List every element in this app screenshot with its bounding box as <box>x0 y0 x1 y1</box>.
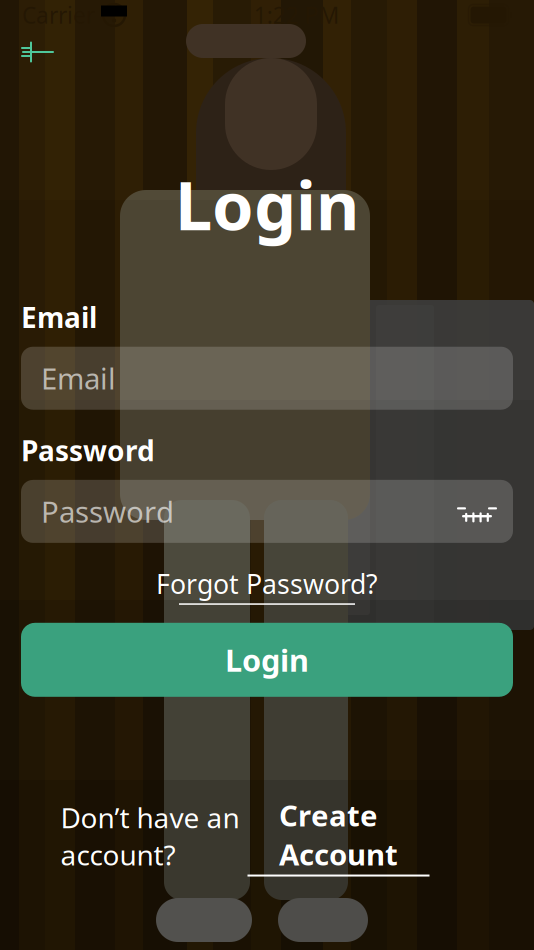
staticText: Create Account <box>279 796 398 873</box>
staticText: Forgot Password? <box>156 566 378 601</box>
button[interactable]: Login <box>21 623 513 697</box>
staticText: Password <box>21 432 155 469</box>
staticText: Carrier <box>22 0 95 30</box>
staticText: Login <box>225 639 309 680</box>
button[interactable]: Don’t have an account? <box>44 788 489 878</box>
staticText: Email <box>21 298 97 336</box>
staticText: Email <box>41 359 116 398</box>
staticText: Password <box>41 492 174 531</box>
staticText: 1:22 PM <box>254 0 340 30</box>
button[interactable]: Forgot Password? <box>142 562 392 609</box>
staticText: Don’t have an account? <box>60 799 239 873</box>
staticText: Login <box>175 160 359 248</box>
button[interactable]: Show password <box>451 485 503 537</box>
button[interactable]: Back <box>10 30 66 74</box>
